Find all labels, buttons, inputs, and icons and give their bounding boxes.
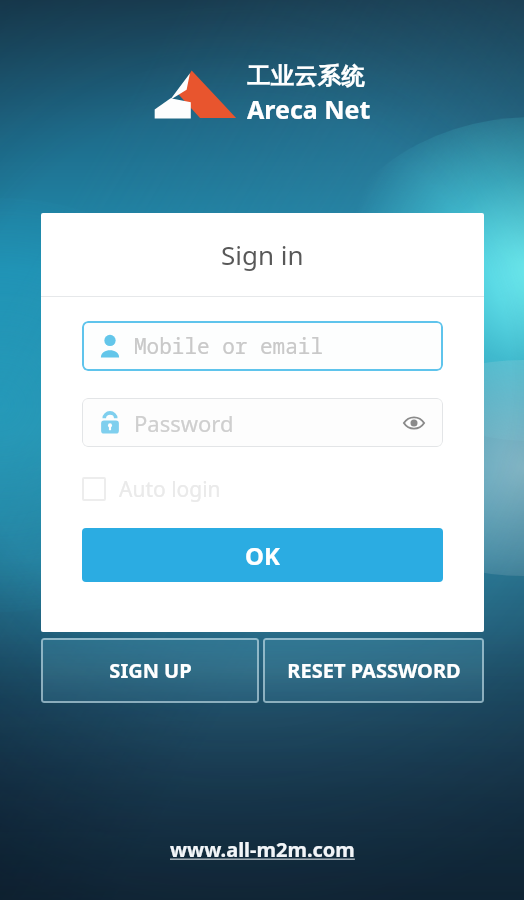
staticText: RESET PASSWORD — [287, 657, 461, 684]
staticText: OK — [245, 539, 280, 572]
staticText: SIGN UP — [109, 657, 192, 684]
staticText: Mobile or email — [134, 332, 323, 361]
button[interactable]: Auto login — [82, 473, 221, 505]
button[interactable]: RESET PASSWORD — [263, 638, 484, 703]
button[interactable]: Mobile or email — [82, 321, 443, 371]
staticText: Areca Net — [247, 92, 371, 126]
button[interactable]: Password — [82, 398, 443, 447]
staticText: 工业云系统 — [247, 62, 365, 91]
staticText: Password — [134, 408, 399, 438]
button[interactable]: OK — [82, 528, 443, 582]
button[interactable]: SIGN UP — [41, 638, 259, 703]
staticText: Auto login — [119, 475, 221, 504]
button[interactable]: Show password — [399, 408, 429, 438]
button[interactable]: www.all-m2m.com — [170, 836, 355, 863]
staticText: Sign in — [221, 237, 304, 272]
